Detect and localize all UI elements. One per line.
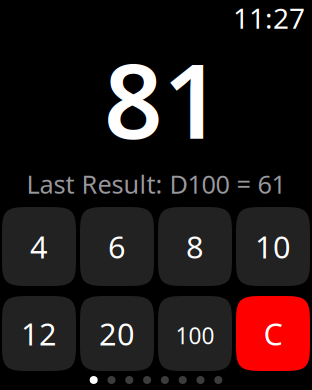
staticText: C — [263, 313, 282, 354]
staticText: 10 — [255, 226, 291, 267]
staticText: Last Result: D100 = 61 — [26, 167, 285, 201]
button[interactable]: 12 — [2, 296, 76, 371]
button[interactable]: 20 — [80, 296, 154, 371]
staticText: 6 — [108, 226, 126, 267]
staticText: 11:27 — [233, 0, 305, 37]
staticText: 81 — [104, 31, 222, 167]
button[interactable]: 6 — [80, 207, 154, 286]
button[interactable]: 100 — [158, 296, 232, 371]
staticText: 20 — [99, 313, 135, 354]
staticText: 4 — [30, 226, 48, 267]
button[interactable]: C — [236, 296, 310, 371]
staticText: 12 — [21, 313, 57, 354]
button[interactable]: 10 — [236, 207, 310, 286]
staticText: 100 — [175, 320, 214, 350]
button[interactable]: 4 — [2, 207, 76, 286]
staticText: 8 — [186, 226, 204, 267]
button[interactable]: 8 — [158, 207, 232, 286]
